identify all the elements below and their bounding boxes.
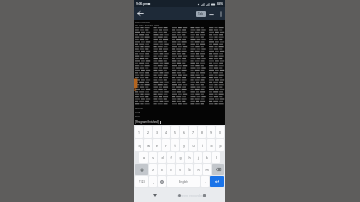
staticText: e (156, 143, 158, 148)
button[interactable]: n (194, 164, 202, 175)
button[interactable]: c (167, 164, 175, 175)
staticText: b (188, 167, 191, 172)
button[interactable]: s (149, 152, 157, 163)
staticText: 3 (156, 130, 158, 135)
button[interactable]: 1 (135, 126, 143, 138)
staticText: x (161, 167, 163, 172)
button[interactable]: w (144, 139, 152, 151)
button[interactable]: z (149, 164, 157, 175)
button[interactable]: 7 (189, 126, 197, 138)
button[interactable]: 9 (207, 126, 215, 138)
button[interactable]: g (176, 152, 184, 163)
staticText: t (174, 143, 176, 148)
button[interactable]: b (185, 164, 193, 175)
staticText: o (210, 143, 213, 148)
staticText: for this private keys (135, 23, 160, 26)
staticText: 84% (217, 2, 223, 6)
button[interactable]: Back (135, 8, 146, 19)
button[interactable]: l (212, 152, 220, 163)
button[interactable]: 5 (171, 126, 179, 138)
button[interactable]: ?123 (135, 176, 148, 187)
staticText: 6 (183, 130, 185, 135)
staticText: h (188, 155, 191, 160)
staticText: 5 (174, 130, 176, 135)
staticText: 9:06 pm (136, 2, 149, 6)
button[interactable]: e (153, 139, 161, 151)
staticText: 2 (147, 130, 149, 135)
staticText: f (170, 155, 172, 160)
button[interactable]: u (189, 139, 197, 151)
button[interactable]: Backspace (212, 164, 224, 175)
staticText: z (152, 167, 154, 172)
staticText: w (147, 143, 150, 148)
button[interactable]: Emoji (158, 176, 166, 187)
staticText: p (219, 143, 222, 148)
staticText: j (198, 155, 199, 160)
button[interactable]: m (203, 164, 211, 175)
staticText: y (183, 143, 185, 148)
button[interactable]: x (158, 164, 166, 175)
button[interactable]: y (180, 139, 188, 151)
button[interactable]: bash session (134, 20, 225, 125)
button[interactable]: p (216, 139, 224, 151)
button[interactable]: 6 (180, 126, 188, 138)
button[interactable]: i (198, 139, 206, 151)
staticText: screen recorder (177, 193, 204, 198)
button[interactable]: h (185, 152, 193, 163)
staticText: core (135, 110, 141, 113)
staticText: 7 (192, 130, 194, 135)
button[interactable]: k (203, 152, 211, 163)
button[interactable]: r (162, 139, 170, 151)
staticText: u (192, 143, 195, 148)
button[interactable]: 8 (198, 126, 206, 138)
staticText: 0 (219, 130, 221, 135)
button[interactable]: English (167, 176, 200, 187)
staticText: Tab (198, 12, 204, 16)
staticText: [Program finished] (135, 120, 159, 124)
staticText: s (152, 155, 154, 160)
button[interactable]: 2 (144, 126, 152, 138)
staticText: end (135, 114, 140, 117)
button[interactable]: 3 (153, 126, 161, 138)
button[interactable]: Shift (135, 164, 148, 175)
staticText: . (205, 179, 206, 184)
staticText: c (170, 167, 172, 172)
button[interactable]: j (194, 152, 202, 163)
staticText: d (161, 155, 164, 160)
staticText: , (153, 179, 154, 184)
staticText: q (138, 143, 141, 148)
button[interactable]: Tab (196, 11, 206, 17)
button[interactable]: Recent apps (200, 191, 209, 200)
button[interactable]: Enter (210, 176, 224, 187)
button[interactable]: o (207, 139, 215, 151)
staticText: a (143, 155, 145, 160)
staticText: n (197, 167, 200, 172)
staticText: l (216, 155, 217, 160)
button[interactable]: , (149, 176, 157, 187)
staticText: 9 (210, 130, 212, 135)
staticText: 4 (165, 130, 167, 135)
button[interactable]: Minimise keyboard (208, 10, 215, 17)
staticText: v (179, 167, 181, 172)
staticText: ?123 (139, 180, 145, 184)
staticText: i (202, 143, 203, 148)
button[interactable]: 0 (216, 126, 224, 138)
button[interactable]: t (171, 139, 179, 151)
staticText: bash session (135, 20, 151, 23)
button[interactable]: f (167, 152, 175, 163)
button[interactable]: Back (150, 191, 159, 200)
staticText: bitcoin (135, 106, 143, 109)
staticText: k (206, 155, 208, 160)
button[interactable]: 4 (162, 126, 170, 138)
button[interactable]: v (176, 164, 184, 175)
button[interactable]: Home (175, 191, 184, 200)
button[interactable]: d (158, 152, 166, 163)
staticText: m (205, 167, 209, 172)
button[interactable]: a (139, 152, 148, 163)
staticText: English (179, 180, 188, 184)
staticText: 1 (138, 130, 140, 135)
button[interactable]: q (135, 139, 143, 151)
button[interactable]: More options (217, 10, 224, 17)
staticText: r (165, 143, 167, 148)
